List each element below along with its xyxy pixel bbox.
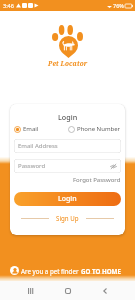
- button[interactable]: Phone Number: [68, 125, 121, 133]
- staticText: Phone Number: [77, 125, 121, 133]
- button[interactable]: Recents: [22, 283, 38, 299]
- staticText: Pet Locator: [48, 59, 88, 68]
- staticText: Login: [58, 112, 78, 122]
- button[interactable]: Sign Up: [56, 214, 79, 222]
- button[interactable]: Login: [14, 192, 121, 206]
- staticText: Email Address: [18, 142, 58, 150]
- button[interactable]: Email Address: [14, 139, 121, 153]
- button[interactable]: Password: [14, 159, 121, 173]
- button[interactable]: Home: [60, 283, 76, 299]
- button[interactable]: Back: [97, 283, 113, 299]
- staticText: 76%: [113, 2, 124, 9]
- button[interactable]: Forgot Password: [73, 176, 121, 184]
- button[interactable]: Email: [14, 125, 68, 133]
- button[interactable]: GO TO HOME: [81, 267, 121, 275]
- staticText: Password: [18, 162, 46, 170]
- staticText: Email: [23, 125, 39, 133]
- staticText: Login: [58, 194, 77, 204]
- staticText: Are you a pet finder: [21, 267, 81, 275]
- staticText: 3:46: [3, 2, 14, 9]
